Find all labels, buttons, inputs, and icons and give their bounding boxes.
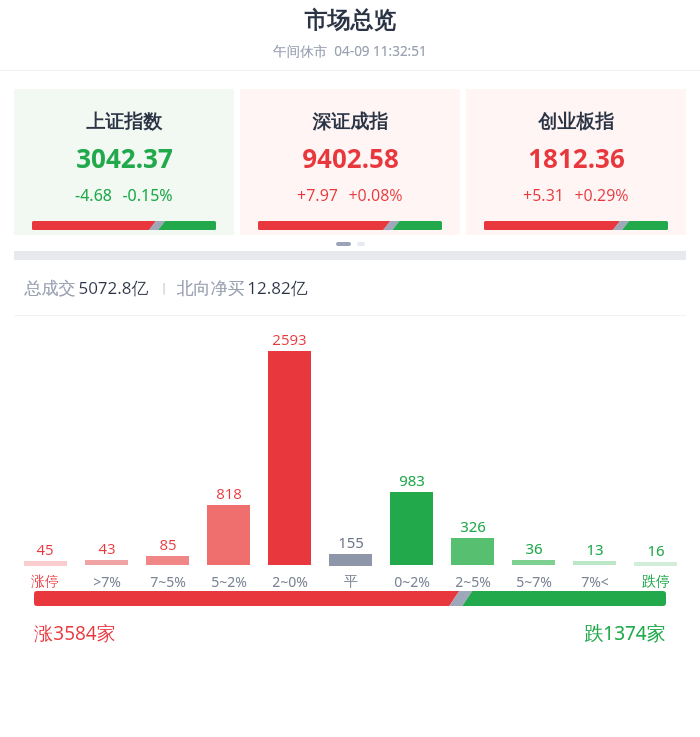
staticText: 市场总览 bbox=[304, 6, 396, 35]
staticText: 深证成指 bbox=[312, 110, 388, 134]
staticText: +0.08% bbox=[348, 184, 403, 206]
staticText: 3042.37 bbox=[76, 140, 173, 175]
staticText: >7% bbox=[93, 572, 121, 591]
staticText: 跌1374家 bbox=[584, 620, 666, 646]
staticText: 983 bbox=[399, 470, 425, 490]
staticText: 5~2% bbox=[211, 572, 247, 591]
staticText: 创业板指 bbox=[538, 110, 614, 134]
staticText: 总成交 bbox=[22, 276, 78, 299]
staticText: 涨停 bbox=[31, 573, 59, 591]
staticText: -0.15% bbox=[122, 184, 173, 206]
staticText: 1812.36 bbox=[528, 140, 625, 175]
staticText: 85 bbox=[159, 534, 177, 554]
staticText: 155 bbox=[338, 532, 364, 552]
staticText: 上证指数 bbox=[86, 110, 162, 134]
staticText: 涨3584家 bbox=[34, 620, 116, 646]
button[interactable]: 深证成指 bbox=[240, 89, 460, 235]
staticText: -4.68 bbox=[75, 184, 112, 206]
staticText: +7.97 bbox=[297, 184, 338, 206]
staticText: 0~2% bbox=[394, 572, 430, 591]
staticText: 2593 bbox=[272, 329, 307, 349]
staticText: +5.31 bbox=[523, 184, 564, 206]
staticText: 9402.58 bbox=[302, 140, 399, 175]
staticText: 跌停 bbox=[642, 573, 670, 591]
button[interactable]: 创业板指 bbox=[466, 89, 686, 235]
staticText: 45 bbox=[36, 539, 54, 559]
staticText: 43 bbox=[98, 538, 116, 558]
staticText: 13 bbox=[586, 539, 604, 559]
staticText: 5~7% bbox=[516, 572, 552, 591]
staticText: 北向净买 bbox=[174, 276, 247, 299]
staticText: 7~5% bbox=[150, 572, 186, 591]
staticText: 818 bbox=[216, 483, 242, 503]
staticText: 午间休市 04-09 11:32:51 bbox=[273, 42, 427, 60]
staticText: 326 bbox=[460, 516, 486, 536]
staticText: 平 bbox=[344, 573, 358, 591]
button[interactable]: 上证指数 bbox=[14, 89, 234, 235]
staticText: 7%< bbox=[581, 572, 609, 591]
staticText: 12.82亿 bbox=[247, 276, 308, 299]
staticText: 2~0% bbox=[272, 572, 308, 591]
staticText: 2~5% bbox=[455, 572, 491, 591]
staticText: +0.29% bbox=[574, 184, 629, 206]
staticText: 丨 bbox=[149, 280, 174, 296]
staticText: 5072.8亿 bbox=[78, 276, 149, 299]
button[interactable]: 总成交 bbox=[0, 260, 700, 315]
staticText: 36 bbox=[525, 538, 543, 558]
staticText: 16 bbox=[647, 540, 665, 560]
